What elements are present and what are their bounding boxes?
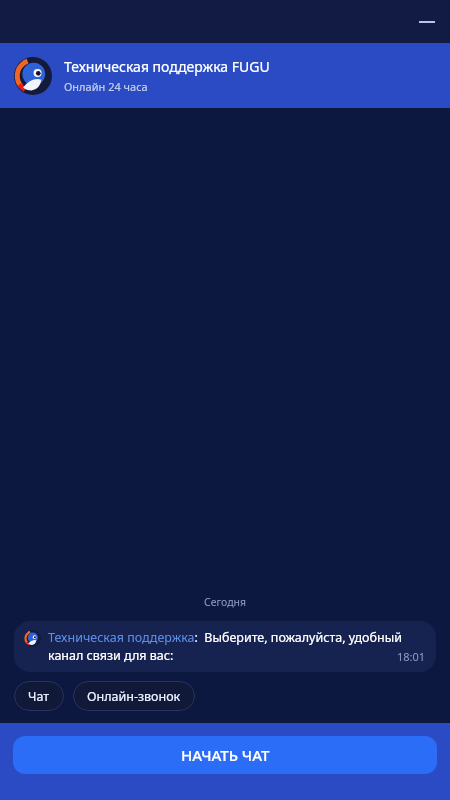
button[interactable]: Чат [14,681,64,711]
staticText: 18:01 [397,649,426,664]
button[interactable]: Техническая поддержка FUGU [0,43,450,108]
button[interactable]: НАЧАТЬ ЧАТ [13,736,437,774]
staticText: Онлайн-звонок [87,688,181,705]
button[interactable]: Техническая поддержка: Выберите, пожалуй… [14,621,436,672]
staticText: Техническая поддержка FUGU [64,57,270,76]
button[interactable]: Онлайн-звонок [73,681,195,711]
button[interactable]: Minimize [412,7,442,37]
staticText: Сегодня [0,595,450,609]
staticText: Чат [28,688,50,705]
staticText: Онлайн 24 часа [64,79,148,94]
staticText: Техническая поддержка: Выберите, пожалуй… [48,629,426,664]
staticText: НАЧАТЬ ЧАТ [181,745,270,765]
